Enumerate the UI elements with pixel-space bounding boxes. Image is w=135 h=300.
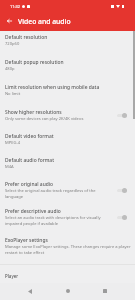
staticText: Default resolution xyxy=(5,34,48,41)
button[interactable]: Default audio format xyxy=(0,151,135,176)
button[interactable]: Home xyxy=(61,284,75,298)
staticText: No limit xyxy=(5,91,21,97)
button[interactable]: ExoPlayer settings xyxy=(0,231,135,260)
button[interactable]: Back xyxy=(23,284,37,298)
staticText: Only some devices can play 2K/4K videos xyxy=(5,116,84,122)
button[interactable]: Default popup resolution xyxy=(0,53,135,78)
staticText: Limit resolution when using mobile data xyxy=(5,84,100,91)
staticText: ExoPlayer settings xyxy=(5,237,48,244)
staticText: Prefer original audio xyxy=(5,181,54,188)
staticText: M4A xyxy=(5,164,14,170)
button[interactable]: Prefer descriptive audio xyxy=(0,203,135,231)
button[interactable]: Default resolution xyxy=(0,28,135,53)
button[interactable]: Default video format xyxy=(0,127,135,151)
staticText: 720p60 xyxy=(5,41,20,47)
button[interactable]: Prefer original audio xyxy=(0,176,135,203)
staticText: Default audio format xyxy=(5,157,55,164)
staticText: Player xyxy=(5,273,19,279)
button[interactable]: Show higher resolutions xyxy=(0,103,135,127)
staticText: Manage some ExoPlayer settings. These ch… xyxy=(5,244,131,255)
staticText: MPEG-4 xyxy=(5,140,21,146)
staticText: 480p xyxy=(5,66,15,72)
button[interactable]: Limit resolution when using mobile data xyxy=(0,78,135,103)
staticText: Show higher resolutions xyxy=(5,109,62,116)
staticText: Select an audio track with descriptions … xyxy=(5,215,111,226)
staticText: Default video format xyxy=(5,133,54,140)
staticText: 11:32 xyxy=(10,4,20,9)
staticText: Select the original audio track regardle… xyxy=(5,188,111,199)
button[interactable]: Navigate up xyxy=(3,15,16,28)
staticText: Video and audio xyxy=(18,17,71,26)
button[interactable]: Recent apps xyxy=(98,284,112,298)
staticText: Default popup resolution xyxy=(5,59,64,66)
staticText: Prefer descriptive audio xyxy=(5,208,61,215)
